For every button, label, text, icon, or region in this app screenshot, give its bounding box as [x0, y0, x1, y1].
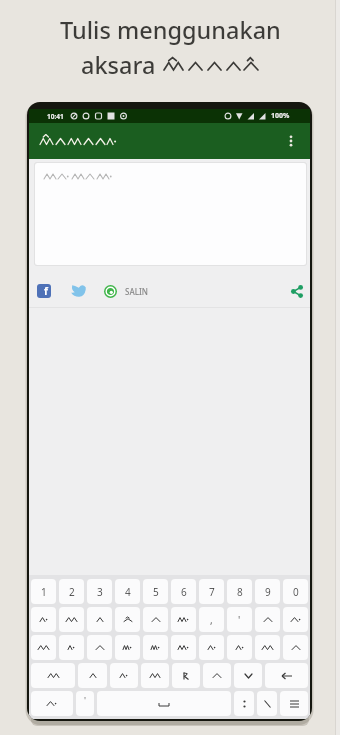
button[interactable]	[70, 284, 86, 298]
button[interactable]	[172, 663, 200, 688]
button[interactable]: ,	[199, 607, 224, 632]
button[interactable]	[265, 663, 308, 688]
button[interactable]: f	[37, 284, 51, 298]
button[interactable]: 4	[115, 579, 140, 604]
staticText: 9	[265, 585, 271, 599]
staticText: ,	[210, 613, 213, 627]
staticText: 5	[153, 585, 159, 599]
button[interactable]: 2	[59, 579, 84, 604]
button[interactable]: SALIN	[125, 283, 148, 299]
staticText: 6	[181, 585, 187, 599]
button[interactable]	[234, 663, 262, 688]
button[interactable]: '	[227, 607, 252, 632]
staticText: 100%	[271, 111, 290, 121]
button[interactable]: 6	[171, 579, 196, 604]
staticText: 8	[237, 585, 243, 599]
staticText: f	[44, 284, 48, 298]
button[interactable]: 1	[31, 579, 56, 604]
button[interactable]: 8	[227, 579, 252, 604]
button[interactable]: 3	[87, 579, 112, 604]
button[interactable]	[59, 635, 84, 660]
button[interactable]	[78, 663, 107, 688]
staticText: '	[84, 694, 87, 706]
button[interactable]	[115, 607, 140, 632]
button[interactable]	[31, 663, 75, 688]
button[interactable]	[59, 607, 84, 632]
button[interactable]	[283, 635, 308, 660]
staticText: 10:41	[47, 112, 64, 121]
button[interactable]: 9	[255, 579, 280, 604]
staticText: SALIN	[125, 286, 148, 297]
staticText: 2	[69, 585, 75, 599]
button[interactable]	[283, 607, 308, 632]
button[interactable]	[171, 607, 196, 632]
button[interactable]	[283, 133, 299, 149]
staticText: '	[238, 613, 241, 627]
button[interactable]	[103, 284, 117, 298]
button[interactable]	[31, 607, 56, 632]
button[interactable]	[203, 663, 231, 688]
button[interactable]	[31, 691, 73, 716]
button[interactable]: 7	[199, 579, 224, 604]
button[interactable]	[143, 607, 168, 632]
button[interactable]	[115, 635, 140, 660]
staticText: aksara	[81, 49, 162, 81]
button[interactable]	[35, 163, 306, 265]
button[interactable]	[31, 635, 56, 660]
staticText: 4	[125, 585, 131, 599]
staticText: 7	[209, 585, 215, 599]
button[interactable]	[143, 635, 168, 660]
button[interactable]	[199, 635, 224, 660]
button[interactable]	[87, 607, 112, 632]
button[interactable]: 5	[143, 579, 168, 604]
staticText: 0	[293, 585, 299, 599]
staticText: 1	[41, 585, 47, 599]
button[interactable]: 0	[283, 579, 308, 604]
button[interactable]	[110, 663, 138, 688]
button[interactable]	[255, 635, 280, 660]
button[interactable]	[141, 663, 169, 688]
button[interactable]	[255, 607, 280, 632]
button[interactable]: '	[76, 691, 94, 716]
button[interactable]	[280, 691, 308, 716]
button[interactable]	[289, 283, 305, 299]
staticText: 3	[97, 585, 103, 599]
button[interactable]	[257, 691, 277, 716]
button[interactable]	[171, 635, 196, 660]
staticText: Tulis menggunakan	[60, 14, 281, 46]
button[interactable]	[234, 691, 254, 716]
button[interactable]	[227, 635, 252, 660]
button[interactable]	[97, 691, 231, 716]
button[interactable]	[87, 635, 112, 660]
